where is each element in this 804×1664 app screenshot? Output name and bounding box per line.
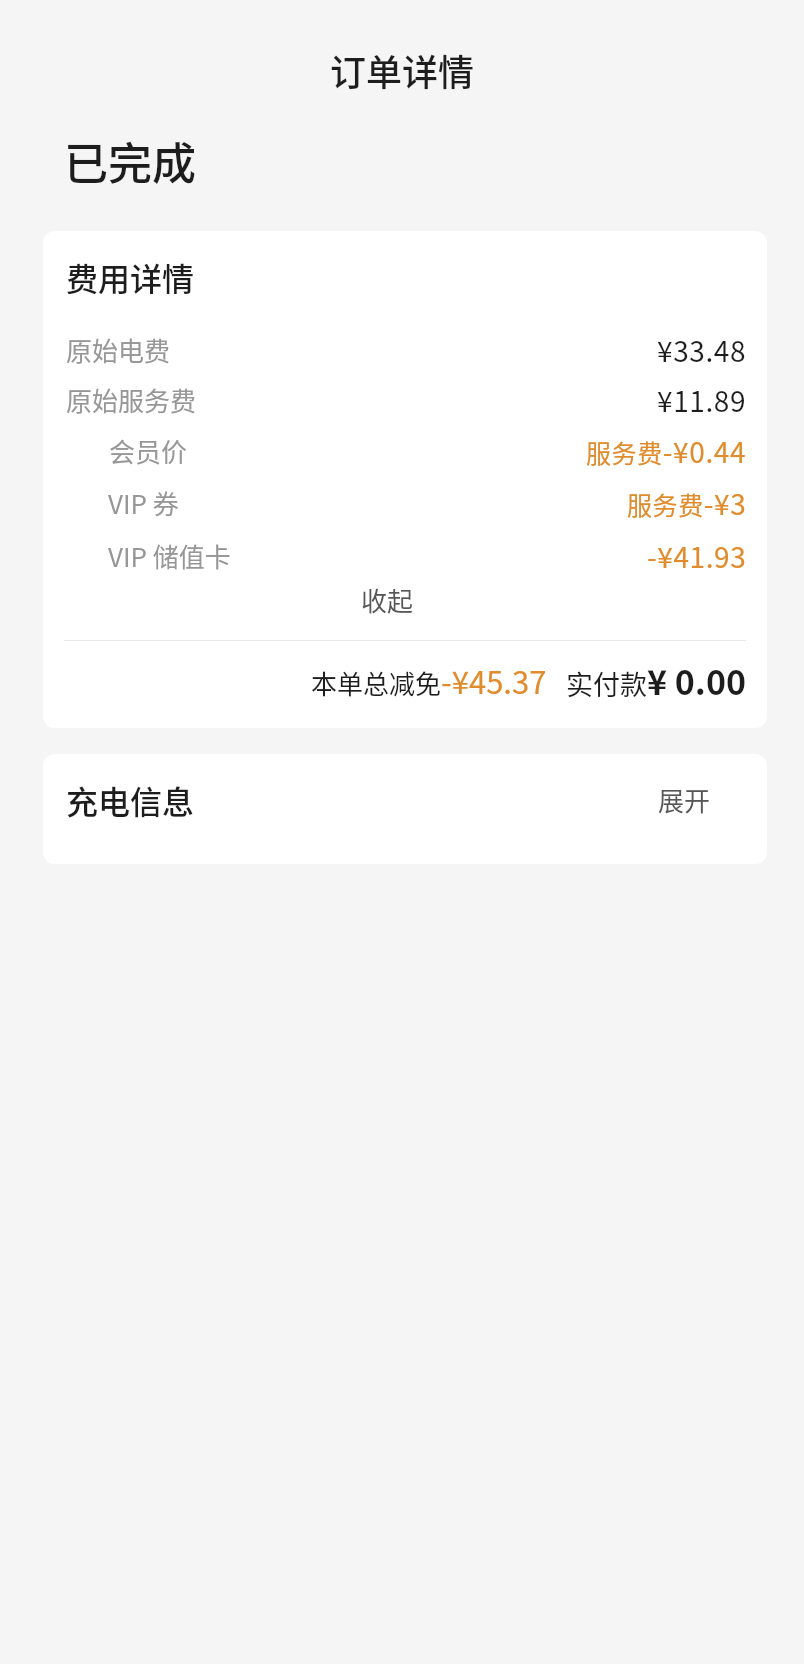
button[interactable]: VIP 券	[43, 477, 767, 529]
button[interactable]: VIP 储值卡	[43, 530, 767, 582]
staticText: 费用详情	[66, 254, 195, 294]
staticText: 展开	[658, 781, 711, 819]
staticText: 充电信息	[66, 777, 195, 823]
staticText: VIP 券	[108, 484, 179, 522]
staticText: 收起	[361, 581, 414, 619]
button[interactable]: 原始电费	[43, 324, 767, 376]
staticText: 订单详情	[330, 44, 475, 96]
staticText: 已完成	[64, 129, 196, 189]
button[interactable]: 充电信息	[43, 754, 767, 864]
staticText: ¥33.48	[657, 330, 747, 371]
staticText: 原始服务费	[66, 381, 197, 419]
staticText: 会员价	[109, 432, 188, 470]
staticText: -¥41.93	[647, 536, 747, 577]
staticText: 服务费-¥0.44	[586, 431, 747, 472]
button[interactable]: 原始服务费	[43, 374, 767, 426]
button[interactable]: 收起	[43, 578, 767, 622]
staticText: 服务费-¥3	[627, 483, 747, 524]
staticText: 原始电费	[66, 331, 171, 369]
button[interactable]: 会员价	[43, 425, 767, 477]
staticText: ¥11.89	[657, 380, 747, 421]
staticText: 实付款¥ 0.00	[566, 656, 747, 705]
staticText: VIP 储值卡	[108, 537, 231, 575]
staticText: 本单总减免-¥45.37	[311, 658, 547, 703]
